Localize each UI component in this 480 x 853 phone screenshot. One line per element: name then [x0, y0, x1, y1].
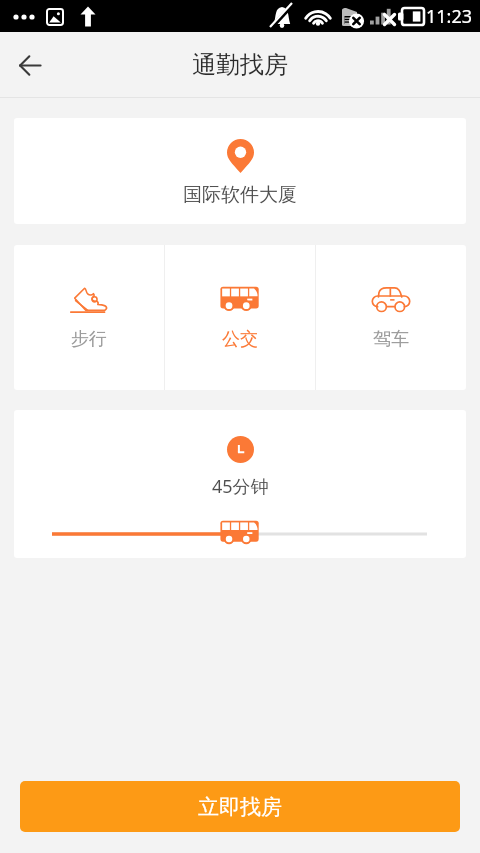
staticText: 11:23: [426, 4, 473, 29]
button[interactable]: 立即找房: [20, 781, 460, 832]
staticText: 通勤找房: [192, 50, 288, 80]
button[interactable]: 公交: [165, 245, 315, 390]
staticText: 国际软件大厦: [183, 183, 297, 207]
button[interactable]: 驾车: [316, 245, 466, 390]
staticText: 驾车: [373, 328, 409, 351]
staticText: 45分钟: [212, 474, 269, 499]
button[interactable]: 步行: [14, 245, 164, 390]
staticText: 公交: [222, 328, 258, 351]
staticText: 立即找房: [198, 794, 282, 820]
staticText: 步行: [71, 328, 107, 351]
button[interactable]: Back: [0, 33, 60, 97]
